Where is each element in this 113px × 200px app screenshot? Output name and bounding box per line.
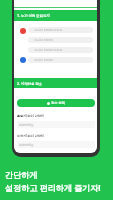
staticText: 입력하세요 — [19, 123, 34, 127]
staticText: 2. 시작하실 장소 — [17, 81, 42, 86]
staticText: 가나다 라마바 — [34, 58, 53, 62]
button[interactable]: 장소 선택 — [17, 99, 95, 107]
button[interactable]: 가나다 라마바 — [34, 37, 93, 43]
staticText: 가나다 라마바 사아자 — [34, 48, 63, 52]
staticText: 가나다 라마바 — [34, 38, 53, 42]
button[interactable]: 입력하세요 — [19, 141, 95, 148]
staticText: 간단하게 — [5, 170, 38, 180]
button[interactable]: 가나다 라마바 사아자 — [34, 27, 93, 33]
staticText: 입력하세요 — [19, 143, 34, 147]
staticText: 도착지(장소) 간략히 — [17, 134, 44, 138]
staticText: 장소 선택 — [51, 101, 65, 105]
button[interactable]: 입력하세요 — [19, 121, 95, 128]
button[interactable]: 가나다 라마바 사아자 — [34, 47, 93, 53]
staticText: 설정하고 편리하게 즐기자! — [5, 182, 101, 193]
staticText: 가나다 라마바 사아자 — [34, 28, 63, 32]
staticText: 1. 누가 어떤 모임인지 — [17, 13, 50, 18]
staticText: 출발지(장소) 간략히 — [17, 114, 44, 118]
button[interactable]: 가나다 라마바 — [34, 57, 93, 63]
